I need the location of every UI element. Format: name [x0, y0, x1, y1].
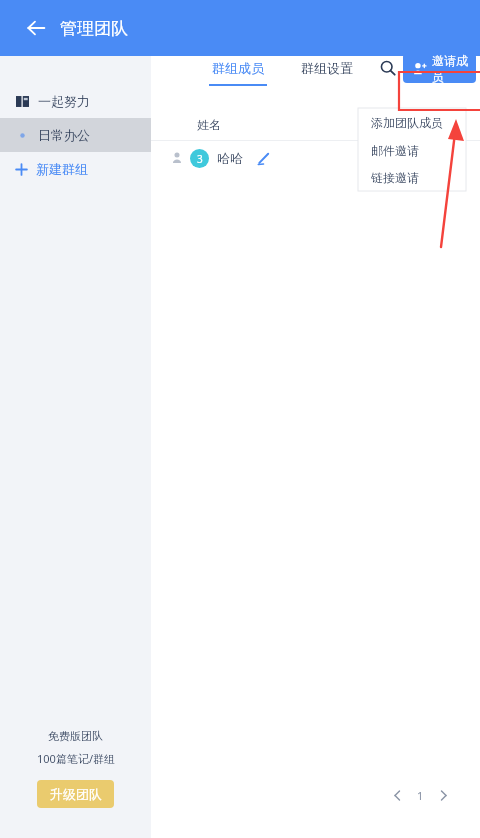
button[interactable]: 1 [408, 788, 432, 803]
button[interactable]: 链接邀请 [358, 164, 466, 191]
staticText: 升级团队 [50, 786, 102, 802]
staticText: 一起努力 [38, 93, 90, 109]
button[interactable]: 3 [151, 141, 480, 175]
button[interactable]: 新建群组 [0, 152, 151, 186]
staticText: 免费版团队 [48, 729, 103, 743]
staticText: 新建群组 [36, 161, 88, 177]
button[interactable]: Previous page [386, 784, 408, 806]
button[interactable]: Back [14, 6, 58, 50]
staticText: 100篇笔记/群组 [37, 751, 115, 766]
button[interactable]: 邮件邀请 [358, 136, 466, 164]
staticText: 群组成员 [212, 60, 264, 76]
button[interactable]: Search [373, 53, 403, 83]
staticText: 链接邀请 [371, 170, 419, 185]
button[interactable]: 一起努力 [0, 84, 151, 118]
staticText: 3 [197, 152, 203, 166]
staticText: 1 [417, 788, 424, 803]
button[interactable]: 日常办公 [0, 118, 151, 152]
button[interactable]: Next page [432, 784, 454, 806]
staticText: 管理团队 [60, 18, 128, 39]
staticText: 添加团队成员 [371, 115, 443, 130]
button[interactable]: 群组成员 [203, 56, 273, 90]
button[interactable]: Edit [253, 148, 273, 168]
staticText: 群组设置 [301, 60, 353, 76]
button[interactable]: 群组设置 [295, 61, 359, 85]
staticText: 邀请成员 [432, 53, 476, 83]
staticText: 哈哈 [217, 150, 243, 166]
button[interactable]: 邀请成员 [403, 53, 476, 83]
button[interactable]: 添加团队成员 [358, 108, 466, 136]
staticText: 姓名 [197, 117, 221, 132]
staticText: 日常办公 [38, 127, 90, 143]
button[interactable]: 升级团队 [37, 780, 114, 808]
staticText: 邮件邀请 [371, 143, 419, 158]
